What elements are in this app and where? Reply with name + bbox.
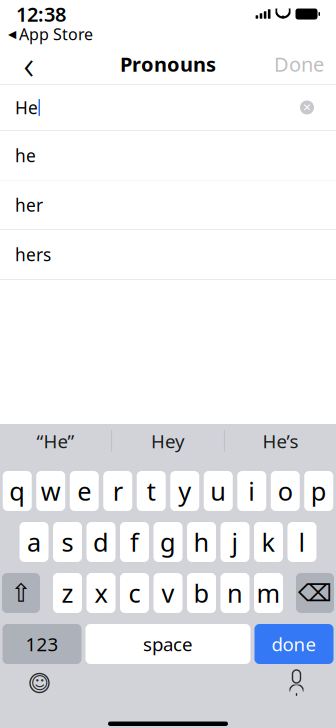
button[interactable]: e — [70, 471, 99, 511]
button[interactable]: c — [120, 573, 149, 613]
button[interactable]: hers — [0, 230, 336, 279]
staticText: u — [210, 474, 226, 508]
staticText: ⇧ — [10, 579, 31, 607]
button[interactable]: m — [254, 573, 283, 613]
staticText: He — [15, 96, 38, 119]
staticText: y — [178, 474, 191, 508]
button[interactable]: i — [237, 471, 266, 511]
staticText: ◀ — [8, 28, 16, 40]
staticText: he — [15, 144, 36, 167]
staticText: He’s — [263, 429, 299, 453]
staticText: v — [161, 576, 174, 610]
staticText: o — [278, 474, 293, 508]
button[interactable]: Shift — [2, 573, 40, 613]
staticText: x — [94, 576, 107, 610]
button[interactable]: Dictation — [274, 665, 318, 701]
staticText: hers — [15, 243, 51, 266]
button[interactable]: v — [153, 573, 182, 613]
button[interactable]: p — [304, 471, 333, 511]
button[interactable]: f — [120, 522, 149, 562]
button[interactable]: u — [204, 471, 233, 511]
button[interactable]: x — [86, 573, 115, 613]
staticText: c — [128, 576, 140, 610]
button[interactable]: space — [85, 624, 250, 664]
button[interactable]: her — [0, 180, 336, 230]
button[interactable]: 123 — [2, 624, 81, 664]
staticText: p — [311, 474, 327, 508]
button[interactable]: j — [220, 522, 249, 562]
staticText: a — [27, 525, 41, 559]
staticText: z — [61, 576, 73, 610]
staticText: ✕ — [302, 101, 311, 113]
button[interactable]: he — [0, 131, 336, 180]
button[interactable]: ◀ — [8, 23, 93, 45]
button[interactable]: y — [170, 471, 199, 511]
button[interactable]: h — [187, 522, 216, 562]
button[interactable]: Clear text — [293, 93, 321, 121]
staticText: 123 — [25, 632, 58, 656]
staticText: r — [113, 474, 123, 508]
button[interactable]: Delete — [296, 573, 334, 613]
button[interactable]: Done — [274, 44, 324, 84]
button[interactable]: r — [103, 471, 132, 511]
staticText: f — [130, 525, 139, 559]
staticText: l — [298, 525, 305, 559]
staticText: space — [143, 632, 193, 656]
button[interactable]: k — [254, 522, 283, 562]
staticText: t — [147, 474, 156, 508]
staticText: e — [77, 474, 91, 508]
staticText: Done — [274, 51, 324, 77]
button[interactable]: b — [187, 573, 216, 613]
staticText: s — [61, 525, 73, 559]
staticText: k — [261, 525, 275, 559]
staticText: g — [160, 525, 176, 559]
staticText: h — [193, 525, 209, 559]
button[interactable]: n — [220, 573, 249, 613]
staticText: App Store — [19, 23, 93, 45]
button[interactable]: g — [153, 522, 182, 562]
button[interactable]: o — [271, 471, 300, 511]
staticText: b — [193, 576, 209, 610]
staticText: “He” — [36, 429, 74, 453]
button[interactable]: Emoji — [17, 665, 61, 701]
button[interactable]: He’s — [225, 418, 336, 464]
staticText: ☺ — [30, 673, 48, 693]
staticText: ⌫ — [298, 579, 332, 607]
staticText: w — [41, 474, 61, 508]
button[interactable]: Back — [12, 44, 46, 84]
staticText: Hey — [151, 429, 185, 453]
button[interactable]: “He” — [0, 418, 111, 464]
button[interactable]: t — [137, 471, 166, 511]
button[interactable]: z — [53, 573, 82, 613]
staticText: m — [256, 576, 280, 610]
staticText: ‹ — [23, 37, 34, 90]
staticText: i — [248, 474, 255, 508]
staticText: n — [227, 576, 243, 610]
button[interactable]: done — [254, 624, 333, 664]
button[interactable]: w — [36, 471, 65, 511]
button[interactable]: l — [287, 522, 316, 562]
button[interactable]: a — [19, 522, 48, 562]
button[interactable]: s — [53, 522, 82, 562]
staticText: her — [15, 193, 43, 216]
staticText: d — [93, 525, 109, 559]
button[interactable]: q — [3, 471, 32, 511]
staticText: Pronouns — [120, 51, 216, 77]
staticText: j — [231, 525, 238, 559]
staticText: q — [9, 474, 25, 508]
button[interactable]: Hey — [112, 418, 224, 464]
staticText: done — [271, 632, 316, 656]
button[interactable]: d — [86, 522, 115, 562]
staticText: 12:38 — [16, 1, 66, 27]
